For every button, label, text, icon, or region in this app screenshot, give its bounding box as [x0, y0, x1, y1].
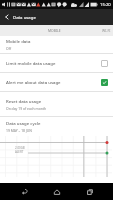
staticText: Data usage [13, 14, 36, 20]
staticText: MOBILE [48, 28, 61, 33]
button[interactable]: Home [48, 183, 65, 200]
staticText: ALERT [15, 150, 24, 154]
staticText: Data usage cycle [6, 120, 41, 126]
staticText: Reset data usage [6, 98, 42, 104]
staticText: On day 19 of each month [6, 106, 47, 111]
staticText: 15:20 [100, 2, 111, 8]
button[interactable]: MOBILE [41, 25, 67, 36]
staticText: WI-FI [102, 28, 111, 33]
staticText: Limit mobile data usage [6, 60, 56, 66]
button[interactable]: Checkbox [101, 60, 108, 67]
button[interactable]: Back [16, 183, 33, 200]
button[interactable]: Alert me about data usage [0, 73, 113, 91]
button[interactable]: Data usage cycle [0, 117, 113, 136]
button[interactable]: Reset data usage [0, 92, 113, 116]
button[interactable]: Recents [81, 183, 98, 200]
staticText: Off [6, 46, 11, 51]
staticText: 2.00GB [15, 146, 25, 150]
staticText: Alert me about data usage [6, 79, 61, 85]
staticText: Mobile data [6, 38, 31, 44]
button[interactable]: Mobile data [0, 36, 113, 53]
button[interactable]: Alert me checkbox [101, 79, 108, 86]
button[interactable]: Limit mobile data usage [0, 54, 113, 72]
staticText: 19 MAY – 18 JUN [6, 128, 32, 133]
button[interactable]: Navigate up [0, 9, 13, 25]
button[interactable]: WI-FI [93, 25, 113, 36]
